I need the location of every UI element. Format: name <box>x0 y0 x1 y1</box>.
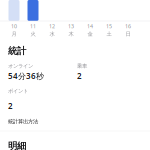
staticText: 明細 <box>8 140 26 150</box>
staticText: 日 <box>125 31 130 37</box>
staticText: ポイント <box>8 88 28 94</box>
staticText: 統計算出方法 <box>8 118 38 125</box>
staticText: 統計 <box>8 45 26 57</box>
staticText: 13 <box>68 23 74 30</box>
button[interactable]: 統計算出方法 <box>8 118 68 125</box>
staticText: 木 <box>68 31 73 37</box>
staticText: 土 <box>106 31 111 37</box>
staticText: 16 <box>125 23 131 30</box>
staticText: 金 <box>87 31 92 37</box>
staticText: 火 <box>30 31 35 37</box>
staticText: 14 <box>87 23 93 30</box>
staticText: 月 <box>11 31 16 37</box>
staticText: 54分36秒 <box>8 71 44 81</box>
staticText: 10 <box>11 23 17 30</box>
staticText: 12 <box>49 23 55 30</box>
staticText: 乗車 <box>77 63 87 69</box>
staticText: 15 <box>106 23 112 30</box>
staticText: オンライン <box>8 63 33 69</box>
staticText: 11 <box>30 23 36 30</box>
staticText: 2 <box>8 101 13 111</box>
staticText: 2 <box>77 71 82 81</box>
staticText: 水 <box>49 31 54 37</box>
